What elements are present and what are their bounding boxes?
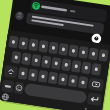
button[interactable]: Spotify track shared in chat xyxy=(0,0,110,110)
